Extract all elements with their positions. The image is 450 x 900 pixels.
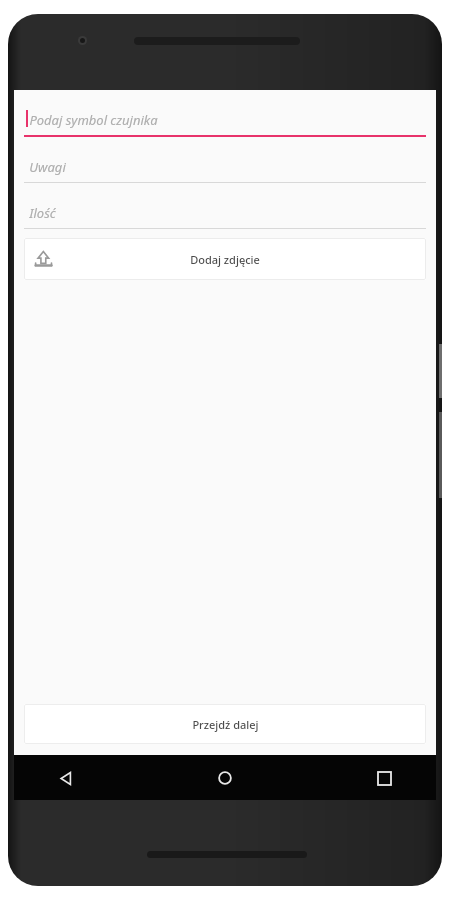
button[interactable]: Ilość — [24, 197, 426, 229]
button[interactable]: Dodaj zdjęcie — [24, 238, 426, 280]
button[interactable]: Uwagi — [24, 151, 426, 183]
button[interactable]: Recent apps — [362, 756, 406, 800]
button[interactable]: Back — [44, 756, 88, 800]
staticText: Podaj symbol czujnika — [29, 111, 158, 129]
button[interactable]: Home — [203, 756, 247, 800]
button[interactable]: Przejdź dalej — [24, 704, 426, 744]
staticText: Dodaj zdjęcie — [190, 252, 260, 267]
button[interactable]: Podaj symbol czujnika — [24, 104, 426, 137]
staticText: Uwagi — [29, 158, 66, 176]
staticText: Przejdź dalej — [192, 717, 259, 732]
staticText: Ilość — [29, 204, 56, 222]
